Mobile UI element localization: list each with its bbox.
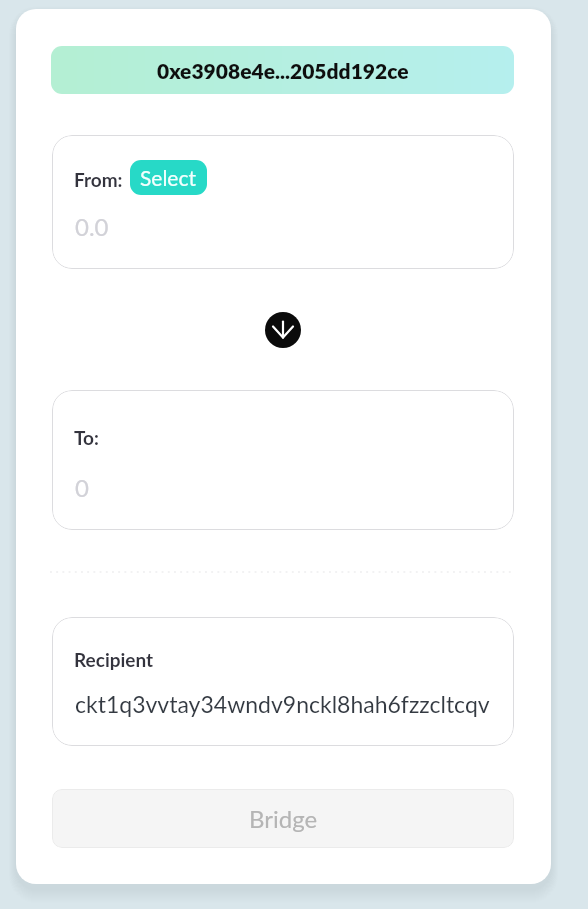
staticText: Select	[140, 165, 197, 190]
button[interactable]: Swap direction	[265, 312, 301, 348]
button[interactable]: 0xe3908e4e...205dd192ce	[51, 46, 514, 94]
staticText: Recipient	[74, 648, 154, 671]
staticText: 0.0	[75, 212, 109, 241]
button[interactable]: Select	[130, 160, 207, 195]
button[interactable]: Bridge	[52, 789, 514, 848]
staticText: 0	[75, 473, 89, 502]
staticText: To:	[74, 426, 99, 449]
staticText: 0xe3908e4e...205dd192ce	[157, 58, 409, 83]
staticText: ckt1q3vvtay34wndv9nckl8hah6fzzcltcqv	[75, 690, 490, 718]
staticText: From:	[74, 168, 123, 191]
staticText: Bridge	[249, 804, 318, 833]
